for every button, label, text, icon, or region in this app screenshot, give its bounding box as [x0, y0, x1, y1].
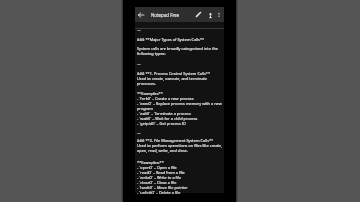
staticText: ---	[137, 27, 141, 32]
button[interactable]: Voice input	[205, 10, 215, 20]
staticText: Notepad Free	[151, 12, 180, 18]
staticText: **Examples:** - `open()` – Open a file -…	[137, 160, 188, 195]
staticText: System calls are broadly categorized int…	[137, 46, 223, 56]
staticText: ### **Major Types of System Calls**	[137, 37, 205, 42]
staticText: ---	[137, 61, 141, 66]
button[interactable]: Navigate up	[135, 9, 147, 21]
staticText: ### **1. Process Control System Calls** …	[137, 71, 223, 86]
staticText: **Examples** - `fork()` – Create a new p…	[137, 91, 223, 126]
button[interactable]: More options	[214, 10, 224, 20]
staticText: ### **2. File Management System Calls** …	[137, 138, 223, 153]
staticText: ---	[137, 130, 141, 135]
button[interactable]: Edit	[193, 9, 204, 20]
